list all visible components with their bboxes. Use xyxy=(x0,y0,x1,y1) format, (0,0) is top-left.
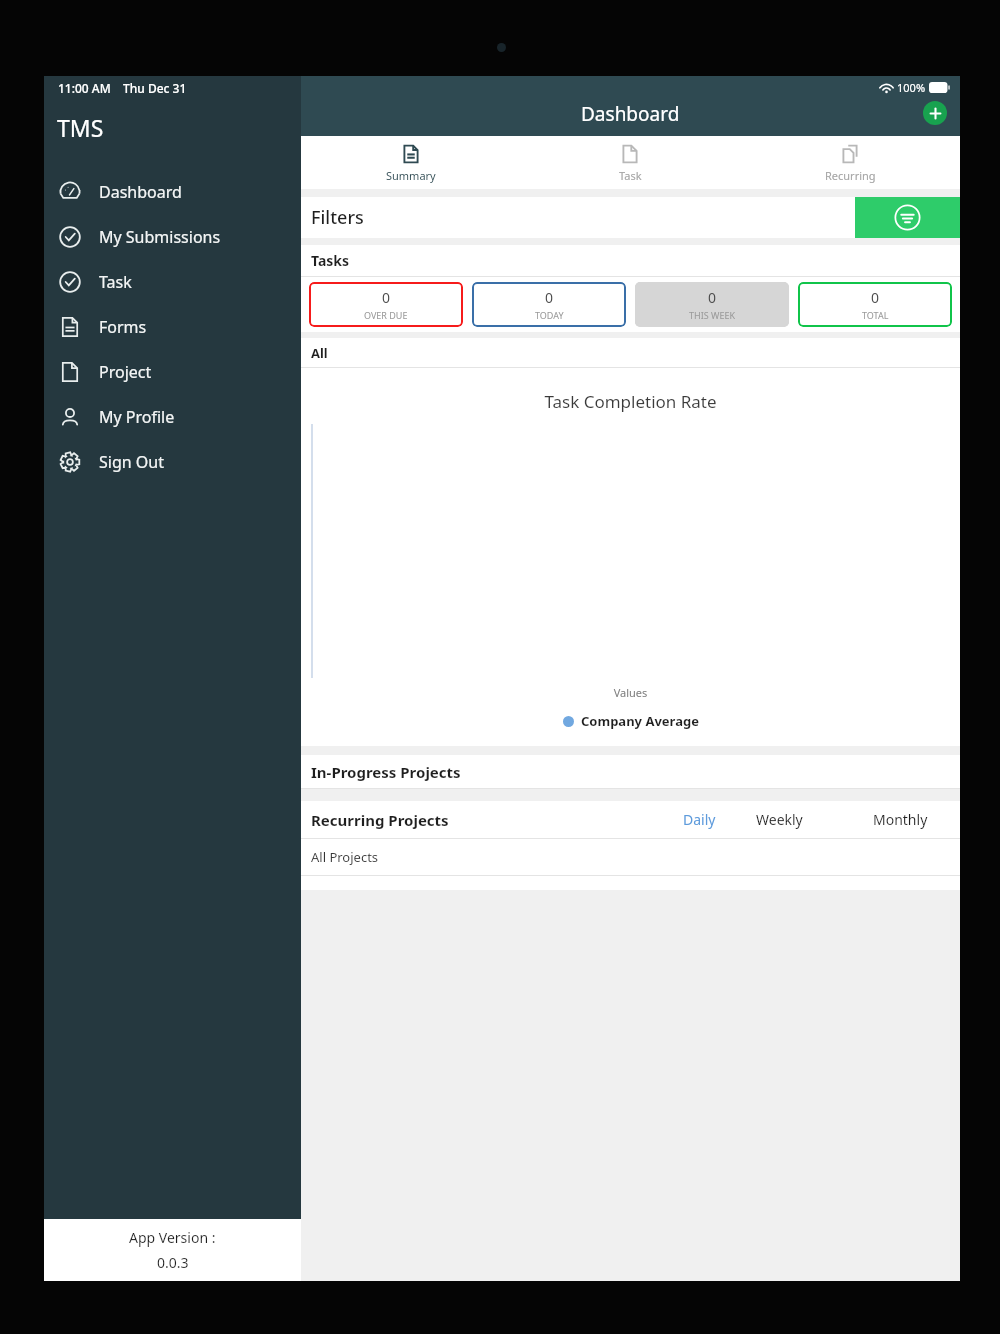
staticText: 0 xyxy=(708,288,717,307)
staticText: OVER DUE xyxy=(364,309,408,321)
staticText: Recurring Projects xyxy=(311,810,449,830)
staticText: All xyxy=(311,344,328,362)
button[interactable]: 0 xyxy=(635,282,789,327)
staticText: 11:00 AM xyxy=(58,80,111,96)
button[interactable]: Recurring xyxy=(740,136,960,189)
staticText: Project xyxy=(99,361,152,383)
staticText: Filters xyxy=(311,205,855,230)
button[interactable]: My Profile xyxy=(44,394,301,439)
staticText: My Submissions xyxy=(99,226,221,248)
staticText: Task xyxy=(99,271,132,293)
staticText: Forms xyxy=(99,316,147,338)
staticText: All Projects xyxy=(311,848,379,866)
staticText: TMS xyxy=(57,112,104,143)
staticText: In-Progress Projects xyxy=(311,762,461,782)
staticText: 0 xyxy=(382,288,391,307)
staticText: Monthly xyxy=(873,810,928,829)
button[interactable]: Forms xyxy=(44,304,301,349)
staticText: Values xyxy=(301,685,960,700)
staticText: 0 xyxy=(545,288,554,307)
staticText: TOTAL xyxy=(862,309,889,321)
staticText: Daily xyxy=(683,810,716,829)
button[interactable]: Filter xyxy=(855,197,960,238)
staticText: App Version : xyxy=(129,1228,216,1247)
staticText: Thu Dec 31 xyxy=(123,80,187,96)
button[interactable]: Daily xyxy=(673,804,726,835)
button[interactable]: Task xyxy=(520,136,740,189)
button[interactable]: 0 xyxy=(472,282,626,327)
staticText: Task Completion Rate xyxy=(301,390,960,413)
button[interactable]: Sign Out xyxy=(44,439,301,484)
staticText: Weekly xyxy=(756,810,803,829)
button[interactable]: Monthly xyxy=(863,804,938,835)
button[interactable]: Task xyxy=(44,259,301,304)
button[interactable]: Dashboard xyxy=(44,169,301,214)
staticText: Dashboard xyxy=(581,101,680,127)
staticText: Dashboard xyxy=(99,181,182,203)
button[interactable]: Project xyxy=(44,349,301,394)
staticText: 100% xyxy=(897,80,926,95)
staticText: My Profile xyxy=(99,406,175,428)
staticText: Summary xyxy=(386,168,436,183)
staticText: Tasks xyxy=(311,251,350,270)
staticText: Company Average xyxy=(581,712,699,730)
button[interactable]: 0 xyxy=(798,282,952,327)
button[interactable]: Add xyxy=(923,101,947,125)
staticText: Recurring xyxy=(825,168,876,183)
staticText: THIS WEEK xyxy=(689,309,735,321)
button[interactable]: Summary xyxy=(301,136,520,189)
staticText: Sign Out xyxy=(99,451,164,473)
button[interactable]: My Submissions xyxy=(44,214,301,259)
staticText: 0.0.3 xyxy=(157,1253,189,1272)
staticText: TODAY xyxy=(535,309,564,321)
staticText: 0 xyxy=(871,288,880,307)
button[interactable]: 0 xyxy=(309,282,463,327)
staticText: Task xyxy=(619,168,642,183)
button[interactable]: Weekly xyxy=(746,804,813,835)
